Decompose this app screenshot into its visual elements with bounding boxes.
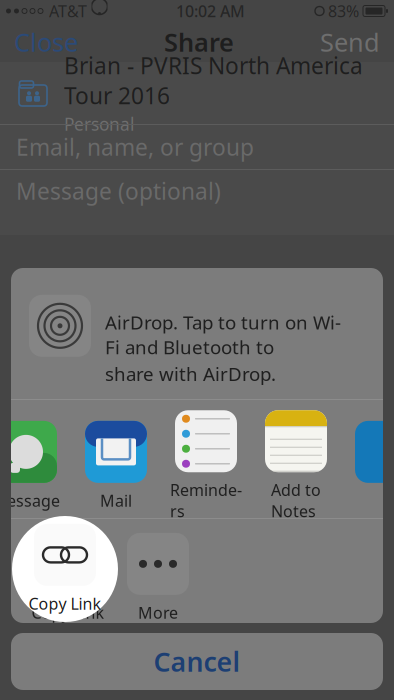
- staticText: More: [138, 602, 178, 623]
- staticText: Message (optional): [16, 176, 221, 206]
- button[interactable]: Cancel: [11, 633, 383, 690]
- button[interactable]: Copy Link: [29, 533, 107, 623]
- staticText: Message: [0, 490, 60, 511]
- staticText: Email, name, or group: [16, 132, 254, 162]
- button[interactable]: [347, 421, 394, 511]
- staticText: Cancel: [153, 644, 240, 679]
- staticText: Copy Link: [31, 602, 104, 623]
- button[interactable]: Message: [0, 421, 65, 511]
- staticText: Send: [320, 25, 380, 59]
- staticText: share with AirDrop.: [105, 361, 276, 386]
- staticText: Add to Notes: [271, 479, 321, 522]
- staticText: 83%: [328, 0, 359, 22]
- staticText: Copy Link: [28, 593, 101, 614]
- staticText: AirDrop. Tap to turn on Wi-Fi and Blueto…: [105, 310, 341, 359]
- staticText: 10:02 AM: [176, 0, 245, 22]
- staticText: Mail: [100, 490, 132, 511]
- staticText: Brian - PVRIS North America Tour 2016: [64, 50, 363, 111]
- button[interactable]: Close: [0, 17, 92, 67]
- button[interactable]: Add to Notes: [257, 410, 335, 522]
- button[interactable]: AirDrop. Tap to turn on Wi-Fi and Blueto…: [11, 268, 383, 399]
- staticText: Reminders: [170, 479, 242, 522]
- staticText: Share: [164, 25, 234, 59]
- button[interactable]: Reminders: [167, 410, 245, 522]
- staticText: Personal: [64, 113, 134, 136]
- button[interactable]: Mail: [77, 421, 155, 511]
- staticText: AT&T: [49, 0, 87, 22]
- button[interactable]: More: [119, 533, 197, 623]
- button[interactable]: Send: [306, 17, 394, 67]
- staticText: Close: [14, 25, 78, 59]
